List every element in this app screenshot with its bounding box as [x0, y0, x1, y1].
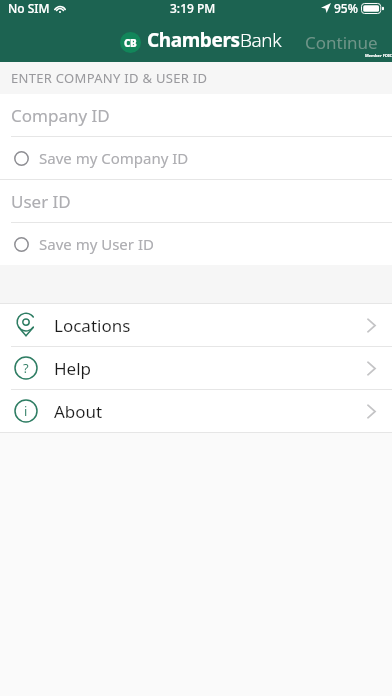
- staticText: 95%: [334, 0, 358, 16]
- button[interactable]: Continue: [291, 23, 392, 62]
- staticText: 3:19 PM: [170, 0, 216, 16]
- staticText: No SIM: [8, 0, 50, 16]
- staticText: Member FDIC: [147, 53, 392, 58]
- button[interactable]: Company ID: [0, 94, 392, 136]
- staticText: User ID: [11, 190, 71, 213]
- staticText: Help: [54, 357, 92, 380]
- staticText: Company ID: [11, 104, 110, 127]
- other: Locations: [14, 313, 38, 337]
- staticText: Save my User ID: [39, 234, 154, 254]
- staticText: ?: [23, 359, 29, 377]
- other: Help: [14, 356, 38, 380]
- button[interactable]: Help: [0, 347, 392, 389]
- staticText: Continue: [305, 31, 378, 54]
- other: About: [14, 399, 38, 423]
- button[interactable]: Locations: [0, 304, 392, 346]
- button[interactable]: About: [0, 390, 392, 432]
- button[interactable]: User ID: [0, 180, 392, 222]
- staticText: i: [24, 402, 28, 420]
- staticText: Chambers: [147, 27, 240, 53]
- staticText: CB: [124, 36, 137, 50]
- button[interactable]: Save my User ID: [0, 223, 392, 265]
- staticText: Bank: [240, 27, 282, 53]
- button[interactable]: Save my Company ID: [0, 137, 392, 179]
- staticText: About: [54, 400, 103, 423]
- staticText: Locations: [54, 314, 131, 337]
- staticText: Save my Company ID: [39, 148, 189, 168]
- staticText: ENTER COMPANY ID & USER ID: [11, 69, 208, 87]
